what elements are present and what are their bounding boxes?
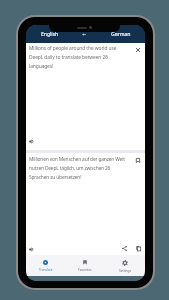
staticText: English [41,31,59,38]
staticText: Millionen von Menschen auf der ganzen We… [29,156,125,180]
button[interactable]: Copy [134,244,143,253]
button[interactable]: Swap languages [74,25,93,43]
button[interactable]: Clear text [133,45,142,54]
staticText: Favorites [78,268,92,272]
button[interactable]: Translate [26,255,65,276]
button[interactable]: Save to favourites [133,156,142,165]
button[interactable]: Settings [105,255,145,276]
button[interactable]: Listen [27,137,36,146]
button[interactable]: English [32,25,67,43]
button[interactable]: Listen [27,245,36,254]
button[interactable]: German [103,25,138,43]
button[interactable]: Share [120,244,129,253]
staticText: Translate [39,268,53,272]
button[interactable]: Favorites [65,255,105,276]
staticText: German [111,31,131,38]
staticText: Settings [119,269,131,273]
staticText: Millions of people around the world use … [29,45,117,69]
